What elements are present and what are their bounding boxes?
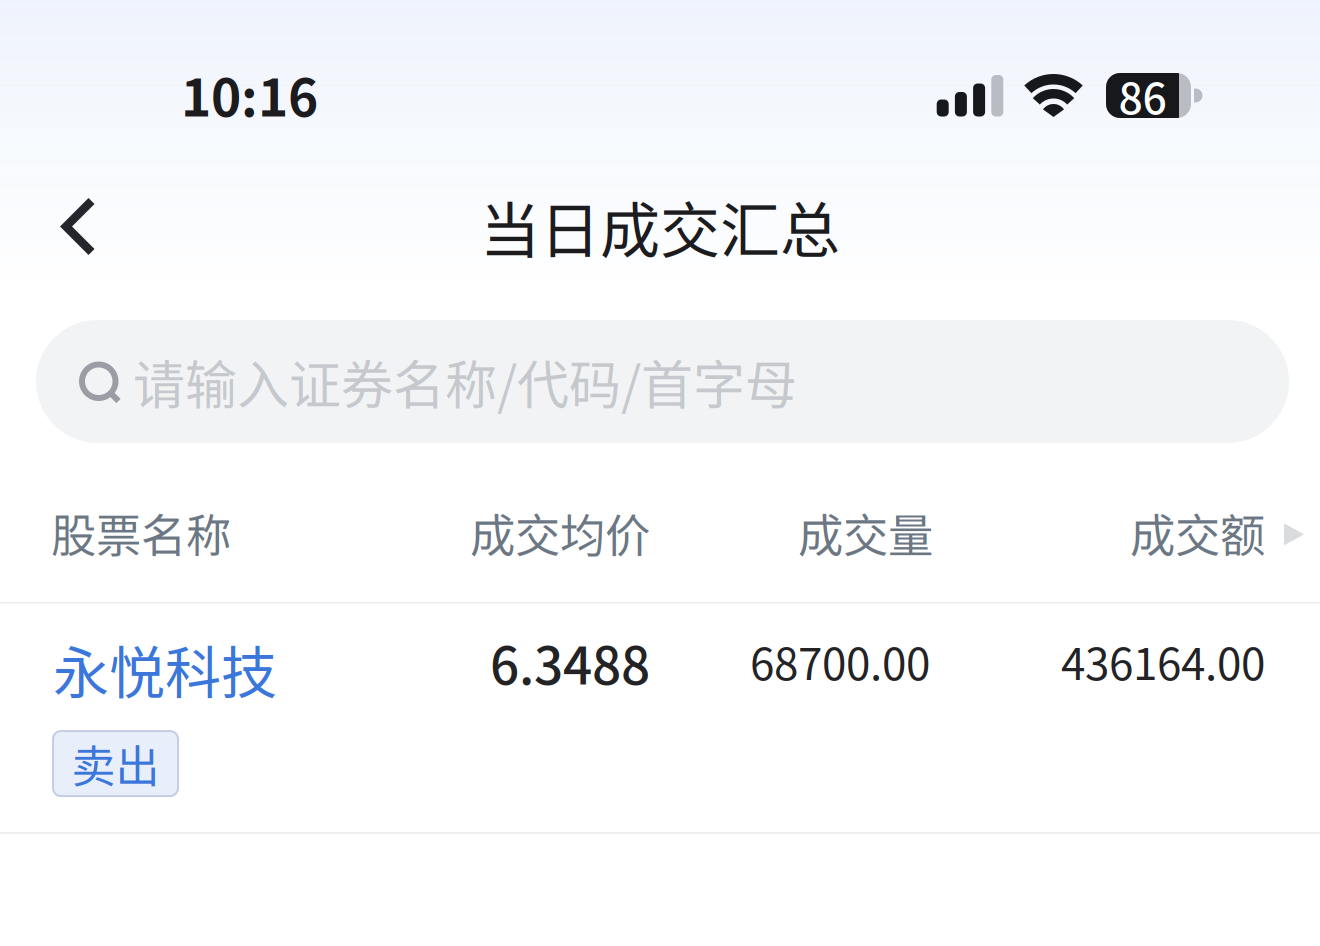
staticText: 成交量 [798, 500, 933, 566]
staticText: 永悦科技 [53, 628, 277, 709]
staticText: 68700.00 [750, 629, 930, 693]
button[interactable]: 成交额 [0, 500, 1305, 566]
staticText: 当日成交汇总 [480, 183, 840, 270]
button[interactable]: 请输入证券名称/代码/首字母 [36, 320, 1289, 443]
staticText: 86 [1118, 65, 1166, 126]
staticText: 卖出 [71, 732, 159, 795]
staticText: 10:16 [181, 57, 318, 131]
staticText: 成交额 [1130, 500, 1265, 566]
button[interactable]: 永悦科技 [0, 628, 1320, 832]
staticText: 请输入证券名称/代码/首字母 [133, 344, 797, 419]
button[interactable]: Back [0, 171, 139, 281]
staticText: 股票名称 [51, 500, 231, 566]
staticText: 6.3488 [490, 625, 650, 699]
staticText: 成交均价 [470, 500, 650, 566]
staticText: 436164.00 [1061, 629, 1265, 693]
